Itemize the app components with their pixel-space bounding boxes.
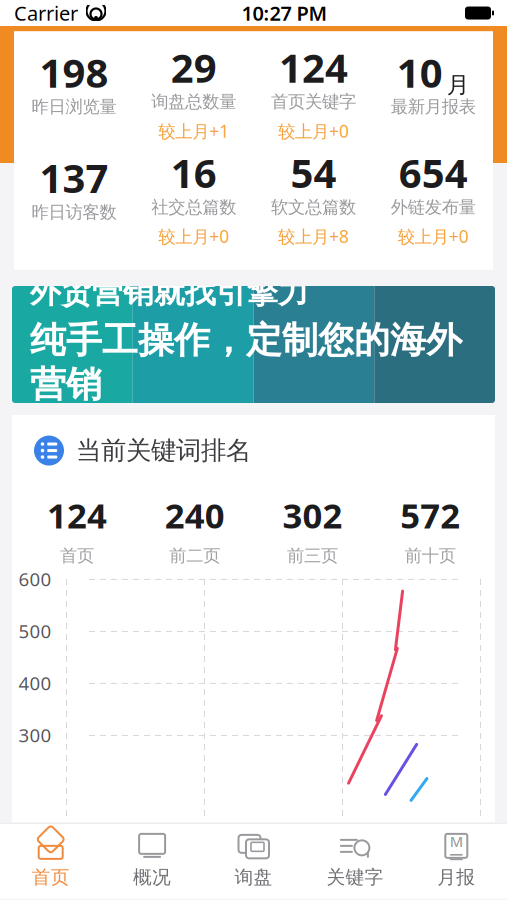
staticText: 较上月+8 [278, 225, 349, 248]
staticText: 500 [18, 618, 51, 643]
button[interactable]: 概况 [101, 824, 203, 899]
staticText: 外链发布量 [391, 196, 476, 218]
staticText: 29 [171, 41, 217, 94]
staticText: 前二页 [169, 545, 220, 566]
staticText: Carrier [14, 0, 78, 26]
staticText: 前十页 [405, 545, 456, 566]
staticText: 最新月报表 [391, 96, 476, 117]
button[interactable]: M [406, 824, 507, 899]
button[interactable]: 询盘 [203, 824, 304, 899]
staticText: 月 [447, 71, 470, 99]
staticText: 600 [18, 566, 51, 591]
staticText: 较上月+0 [398, 225, 469, 248]
staticText: 400 [18, 670, 51, 695]
button[interactable]: 关键字 [304, 824, 406, 899]
staticText: 首页 [60, 545, 94, 566]
staticText: 302 [282, 492, 342, 538]
staticText: 654 [399, 146, 468, 199]
staticText: 137 [39, 151, 108, 204]
staticText: 当前关键词排名 [76, 435, 251, 466]
staticText: 300 [18, 722, 51, 747]
staticText: 昨日访客数 [31, 201, 116, 223]
staticText: 16 [171, 146, 217, 199]
staticText: 较上月+1 [158, 119, 229, 142]
staticText: 572 [400, 492, 460, 538]
staticText: 软文总篇数 [271, 196, 356, 218]
staticText: 10:27 PM [241, 0, 327, 26]
staticText: 首页关键字 [271, 91, 356, 112]
staticText: 240 [165, 492, 225, 538]
staticText: 询盘 [234, 866, 272, 889]
staticText: 10 [397, 46, 443, 99]
staticText: 较上月+0 [278, 119, 349, 142]
staticText: 124 [279, 41, 348, 94]
staticText: 关键字 [326, 866, 383, 889]
staticText: 概况 [133, 866, 171, 889]
staticText: 昨日浏览量 [31, 96, 116, 117]
staticText: 纯手工操作，定制您的海外营销 [30, 318, 462, 406]
staticText: 124 [47, 492, 107, 538]
staticText: 首页 [32, 866, 70, 889]
staticText: 社交总篇数 [151, 196, 236, 218]
button[interactable]: 首页 [0, 824, 101, 899]
staticText: M [450, 831, 463, 851]
staticText: 外贸营销就找引擎力 [30, 273, 309, 311]
staticText: 前三页 [287, 545, 338, 566]
staticText: 询盘总数量 [151, 91, 236, 112]
staticText: 较上月+0 [158, 225, 229, 248]
staticText: 月报 [437, 866, 475, 889]
staticText: 198 [39, 46, 108, 99]
staticText: 54 [290, 146, 336, 199]
